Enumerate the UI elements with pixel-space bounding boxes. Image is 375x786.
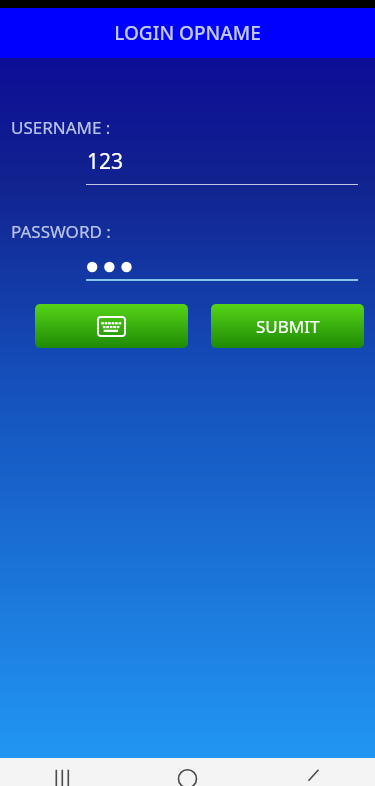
button[interactable]: Show keyboard (35, 304, 188, 348)
staticText: USERNAME : (11, 116, 111, 139)
staticText: PASSWORD : (11, 220, 111, 243)
button[interactable]: Home (125, 758, 250, 786)
staticText: SUBMIT (256, 315, 320, 338)
button[interactable]: SUBMIT (211, 304, 364, 348)
staticText: LOGIN OPNAME (114, 20, 261, 46)
button[interactable]: Back (250, 758, 375, 786)
button[interactable]: Recent apps (0, 758, 125, 786)
staticText: 123 (87, 147, 124, 176)
